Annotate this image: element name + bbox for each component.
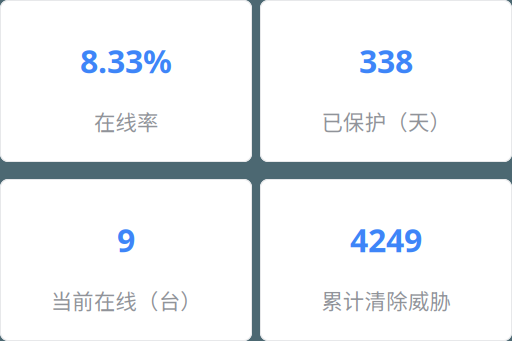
staticText: 8.33% bbox=[80, 39, 172, 83]
staticText: 已保护（天） bbox=[321, 106, 450, 136]
staticText: 338 bbox=[359, 39, 413, 83]
staticText: 在线率 bbox=[94, 106, 158, 136]
button[interactable]: 在线率 8.33% bbox=[0, 0, 252, 162]
staticText: 4249 bbox=[350, 218, 422, 262]
button[interactable]: 当前在线（台） 9 bbox=[0, 179, 252, 341]
staticText: 累计清除威胁 bbox=[321, 285, 450, 315]
staticText: 9 bbox=[117, 218, 135, 262]
button[interactable]: 已保护（天） 338 bbox=[260, 0, 512, 162]
button[interactable]: 累计清除威胁 4249 bbox=[260, 179, 512, 341]
staticText: 当前在线（台） bbox=[51, 285, 201, 315]
